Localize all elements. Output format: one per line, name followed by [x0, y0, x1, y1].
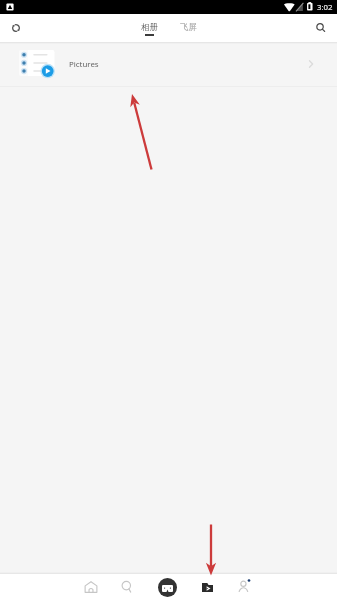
staticText: 3:02 — [317, 2, 333, 13]
button[interactable]: Cardboard — [158, 578, 177, 597]
button[interactable]: Search — [117, 577, 137, 597]
staticText: Pictures — [69, 59, 99, 70]
staticText: 相册 — [141, 22, 158, 33]
button[interactable]: 飞屏 — [176, 19, 201, 37]
button[interactable]: Refresh — [4, 16, 28, 40]
staticText: 飞屏 — [180, 22, 197, 33]
button[interactable]: Profile — [233, 577, 253, 597]
button[interactable]: 相册 — [137, 19, 162, 37]
button[interactable]: Home — [81, 577, 101, 597]
button[interactable]: Search — [309, 16, 333, 40]
button[interactable]: Videos — [197, 577, 217, 597]
button[interactable]: Pictures — [0, 42, 337, 86]
